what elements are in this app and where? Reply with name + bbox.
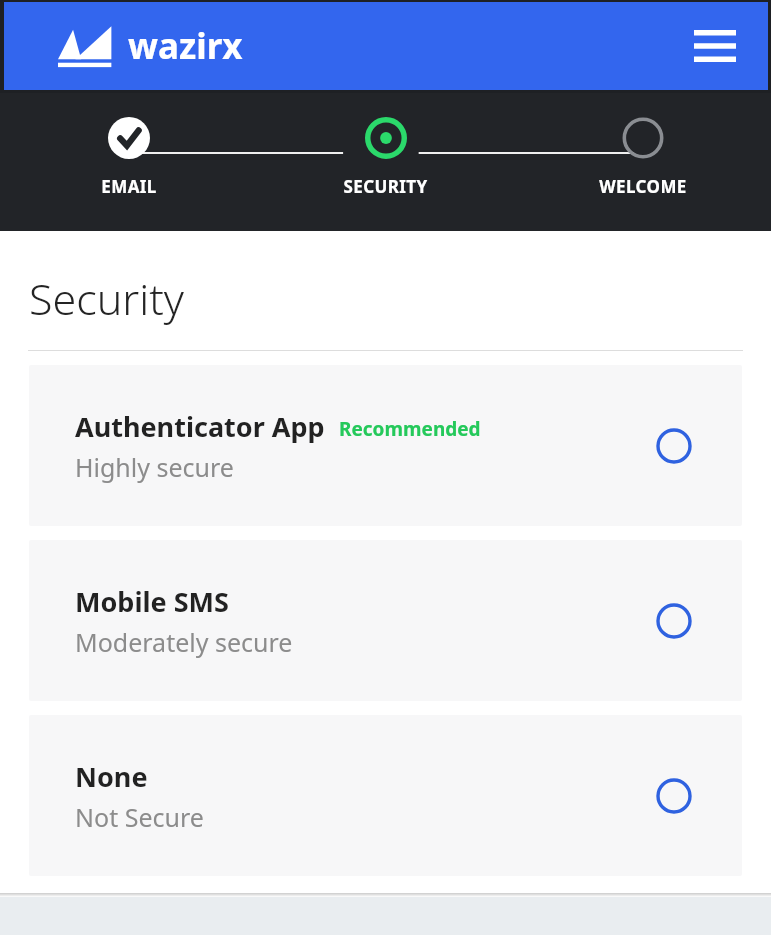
staticText: wazirx <box>128 22 243 70</box>
staticText: Not Secure <box>75 800 204 834</box>
button[interactable]: Menu <box>690 21 740 71</box>
staticText: SECURITY <box>343 175 428 198</box>
staticText: Mobile SMS <box>75 583 229 620</box>
staticText: Highly secure <box>75 450 234 484</box>
button[interactable]: SECURITY <box>257 117 514 198</box>
staticText: Moderately secure <box>75 625 293 659</box>
button[interactable]: Select None <box>652 774 696 818</box>
button[interactable]: EMAIL <box>0 117 257 198</box>
staticText: Authenticator App <box>75 408 325 445</box>
button[interactable]: Select Authenticator App <box>652 424 696 468</box>
button[interactable]: WELCOME <box>514 117 771 198</box>
staticText: WELCOME <box>599 175 687 198</box>
button[interactable]: None <box>29 715 742 876</box>
staticText: EMAIL <box>101 175 157 198</box>
staticText: None <box>75 758 148 795</box>
button[interactable]: WazirX home <box>58 22 243 70</box>
button[interactable]: Authenticator App <box>29 365 742 526</box>
staticText: Security <box>29 269 184 328</box>
staticText: Recommended <box>339 416 481 442</box>
button[interactable]: Select Mobile SMS <box>652 599 696 643</box>
button[interactable]: Mobile SMS <box>29 540 742 701</box>
